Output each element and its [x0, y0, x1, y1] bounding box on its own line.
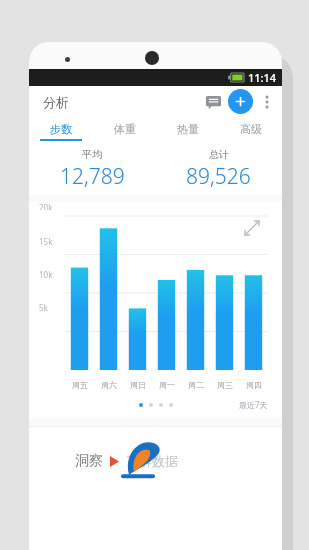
button[interactable]: 洞察: [29, 440, 282, 482]
button[interactable]: 体重: [93, 117, 156, 141]
button[interactable]: 步数: [29, 117, 93, 141]
button[interactable]: More options: [256, 91, 278, 113]
staticText: 总计: [209, 148, 229, 161]
button[interactable]: Messages: [199, 88, 227, 116]
button[interactable]: Add: [228, 89, 253, 114]
staticText: 了解数据: [126, 453, 178, 469]
staticText: 5k: [39, 302, 48, 313]
staticText: 周五: [72, 380, 88, 390]
staticText: 周日: [130, 380, 146, 390]
staticText: 20k: [39, 202, 53, 210]
staticText: 周六: [101, 380, 117, 390]
staticText: 热量: [177, 122, 199, 136]
staticText: 89,526: [186, 162, 251, 191]
staticText: 平均: [82, 148, 102, 161]
staticText: 周三: [217, 380, 233, 390]
staticText: 周一: [159, 380, 175, 390]
staticText: 最近7天: [239, 399, 268, 410]
staticText: 11:14: [248, 70, 277, 85]
button[interactable]: 热量: [156, 117, 219, 141]
staticText: 体重: [114, 122, 136, 136]
staticText: 周四: [246, 380, 262, 390]
staticText: 洞察: [75, 452, 103, 470]
staticText: 12,789: [60, 162, 125, 191]
button[interactable]: 高级: [219, 117, 282, 141]
staticText: 高级: [240, 122, 262, 136]
staticText: 周二: [188, 380, 204, 390]
staticText: 分析: [43, 94, 69, 110]
staticText: 10k: [39, 269, 53, 280]
staticText: 15k: [39, 236, 53, 247]
staticText: 步数: [50, 122, 72, 136]
